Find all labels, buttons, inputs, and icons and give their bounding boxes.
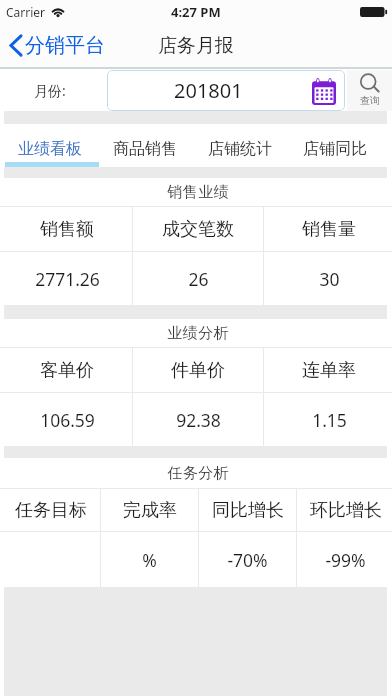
button[interactable]: 店铺同比 (287, 135, 382, 162)
staticText: 1.15 (312, 408, 347, 432)
staticText: 完成率 (123, 499, 177, 522)
button[interactable]: 店铺统计 (192, 135, 287, 162)
staticText: 92.38 (176, 408, 221, 432)
staticText: 销售量 (302, 218, 356, 241)
staticText: 环比增长 (310, 499, 382, 522)
staticText: 26 (188, 267, 209, 291)
staticText: 业绩分析 (167, 324, 229, 343)
button[interactable]: 商品销售 (97, 135, 192, 162)
staticText: 店铺统计 (208, 139, 272, 159)
staticText: 任务分析 (167, 464, 229, 483)
staticText: Carrier (6, 4, 46, 20)
staticText: 同比增长 (212, 499, 284, 522)
button[interactable]: 查询 (347, 70, 392, 111)
staticText: 分销平台 (25, 33, 105, 58)
staticText: 查询 (360, 94, 380, 107)
staticText: 客单价 (40, 359, 94, 382)
staticText: 任务目标 (15, 499, 87, 522)
staticText: 成交笔数 (162, 218, 234, 241)
button[interactable]: 201801 (107, 70, 345, 111)
staticText: -70% (227, 548, 268, 572)
staticText: 销售额 (40, 218, 94, 241)
button[interactable]: 业绩看板 (2, 135, 97, 162)
staticText: 商品销售 (113, 139, 177, 159)
staticText: 201801 (174, 77, 243, 104)
staticText: -99% (325, 548, 366, 572)
staticText: 业绩看板 (18, 139, 82, 159)
staticText: 2771.26 (35, 267, 100, 291)
staticText: 件单价 (171, 359, 225, 382)
staticText: 4:27 PM (171, 3, 221, 21)
staticText: 连单率 (302, 359, 356, 382)
staticText: 30 (319, 267, 340, 291)
staticText: 月份: (34, 81, 66, 100)
staticText: 销售业绩 (167, 183, 229, 202)
staticText: 店务月报 (158, 34, 234, 58)
staticText: 店铺同比 (303, 139, 367, 159)
staticText: 106.59 (40, 408, 95, 432)
button[interactable]: 分销平台 (0, 24, 115, 67)
staticText: % (142, 548, 157, 572)
